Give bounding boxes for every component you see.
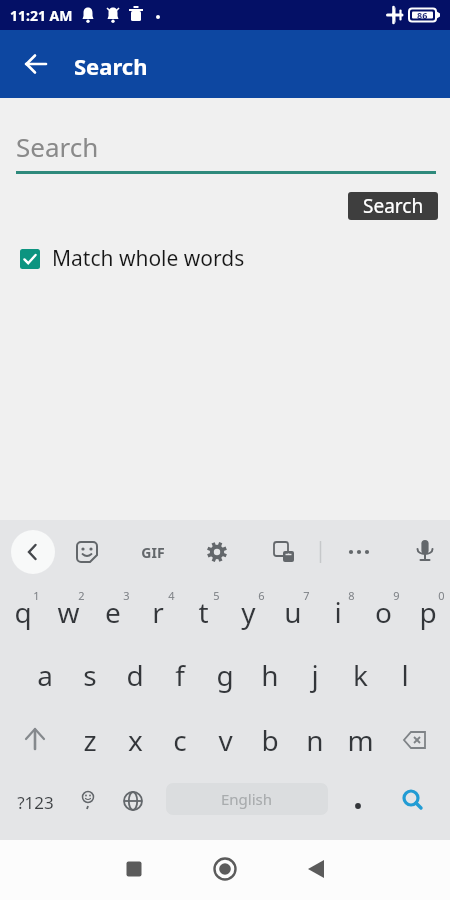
- button[interactable]: s: [68, 655, 112, 695]
- button[interactable]: v: [203, 720, 247, 760]
- staticText: ?123: [17, 791, 54, 814]
- button[interactable]: [195, 530, 239, 574]
- staticText: w: [57, 593, 80, 631]
- staticText: 3: [123, 588, 130, 603]
- staticText: e: [105, 593, 121, 631]
- staticText: k: [353, 656, 368, 694]
- staticText: b: [261, 721, 279, 759]
- button[interactable]: [111, 780, 155, 824]
- button[interactable]: o: [361, 592, 405, 632]
- staticText: t: [198, 593, 209, 631]
- staticText: a: [37, 656, 53, 694]
- staticText: j: [311, 656, 319, 694]
- button[interactable]: w: [46, 592, 90, 632]
- staticText: 9: [393, 588, 400, 603]
- staticText: Search: [74, 51, 148, 81]
- button[interactable]: e: [91, 592, 135, 632]
- staticText: r: [152, 593, 164, 631]
- button[interactable]: [262, 530, 306, 574]
- staticText: n: [306, 721, 324, 759]
- button[interactable]: [336, 780, 380, 824]
- button[interactable]: ?123: [13, 782, 57, 822]
- button[interactable]: r: [136, 592, 180, 632]
- button[interactable]: y: [226, 592, 270, 632]
- staticText: p: [419, 593, 437, 631]
- button[interactable]: c: [158, 720, 202, 760]
- button[interactable]: t: [181, 592, 225, 632]
- button[interactable]: q: [1, 592, 45, 632]
- button[interactable]: u: [271, 592, 315, 632]
- button[interactable]: 8: [329, 575, 373, 615]
- button[interactable]: g: [203, 655, 247, 695]
- button[interactable]: 3: [104, 575, 148, 615]
- staticText: s: [83, 656, 97, 694]
- staticText: v: [218, 721, 233, 759]
- button[interactable]: [13, 718, 57, 762]
- button[interactable]: 5: [194, 575, 238, 615]
- staticText: Search: [363, 193, 424, 219]
- staticText: 2: [78, 588, 85, 603]
- button[interactable]: 9: [374, 575, 418, 615]
- staticText: 5: [213, 588, 220, 603]
- staticText: g: [216, 656, 234, 694]
- button[interactable]: [14, 42, 58, 86]
- button[interactable]: m: [338, 720, 382, 760]
- staticText: 11:21 AM: [10, 6, 73, 25]
- staticText: GIF: [141, 543, 165, 562]
- staticText: 0: [438, 588, 445, 603]
- staticText: h: [261, 656, 279, 694]
- staticText: d: [126, 656, 144, 694]
- staticText: i: [334, 593, 342, 631]
- staticText: English: [221, 789, 273, 809]
- button[interactable]: 0: [419, 575, 450, 615]
- button[interactable]: [65, 530, 109, 574]
- button[interactable]: [389, 778, 437, 822]
- staticText: 86: [417, 9, 428, 21]
- button[interactable]: l: [383, 655, 427, 695]
- button[interactable]: p: [406, 592, 450, 632]
- button[interactable]: h: [248, 655, 292, 695]
- button[interactable]: English: [166, 783, 328, 815]
- button[interactable]: [66, 780, 110, 824]
- button[interactable]: x: [113, 720, 157, 760]
- button[interactable]: [300, 840, 450, 900]
- staticText: c: [173, 721, 187, 759]
- staticText: 6: [258, 588, 265, 603]
- button[interactable]: [150, 840, 300, 900]
- button[interactable]: 1: [14, 575, 58, 615]
- button[interactable]: [11, 530, 55, 574]
- button[interactable]: b: [248, 720, 292, 760]
- staticText: o: [375, 593, 392, 631]
- button[interactable]: [393, 718, 437, 762]
- button[interactable]: 7: [284, 575, 328, 615]
- button[interactable]: n: [293, 720, 337, 760]
- button[interactable]: 2: [59, 575, 103, 615]
- button[interactable]: Search: [348, 192, 438, 220]
- button[interactable]: j: [293, 655, 337, 695]
- staticText: 7: [303, 588, 310, 603]
- button[interactable]: f: [158, 655, 202, 695]
- staticText: Search: [16, 129, 99, 164]
- button[interactable]: z: [68, 720, 112, 760]
- staticText: 8: [348, 588, 355, 603]
- button[interactable]: i: [316, 592, 360, 632]
- staticText: 1: [33, 588, 40, 603]
- button[interactable]: [403, 530, 447, 574]
- staticText: z: [83, 721, 97, 759]
- button[interactable]: 6: [239, 575, 283, 615]
- staticText: m: [347, 721, 374, 759]
- button[interactable]: [337, 530, 381, 574]
- staticText: l: [401, 656, 409, 694]
- staticText: x: [128, 721, 143, 759]
- button[interactable]: 4: [149, 575, 193, 615]
- button[interactable]: GIF: [131, 532, 175, 572]
- button[interactable]: k: [338, 655, 382, 695]
- staticText: u: [284, 593, 302, 631]
- staticText: Match whole words: [52, 244, 245, 273]
- button[interactable]: [0, 840, 150, 900]
- button[interactable]: d: [113, 655, 157, 695]
- button[interactable]: Match whole words: [20, 244, 245, 273]
- staticText: y: [241, 593, 256, 631]
- button[interactable]: a: [23, 655, 67, 695]
- staticText: q: [14, 593, 32, 631]
